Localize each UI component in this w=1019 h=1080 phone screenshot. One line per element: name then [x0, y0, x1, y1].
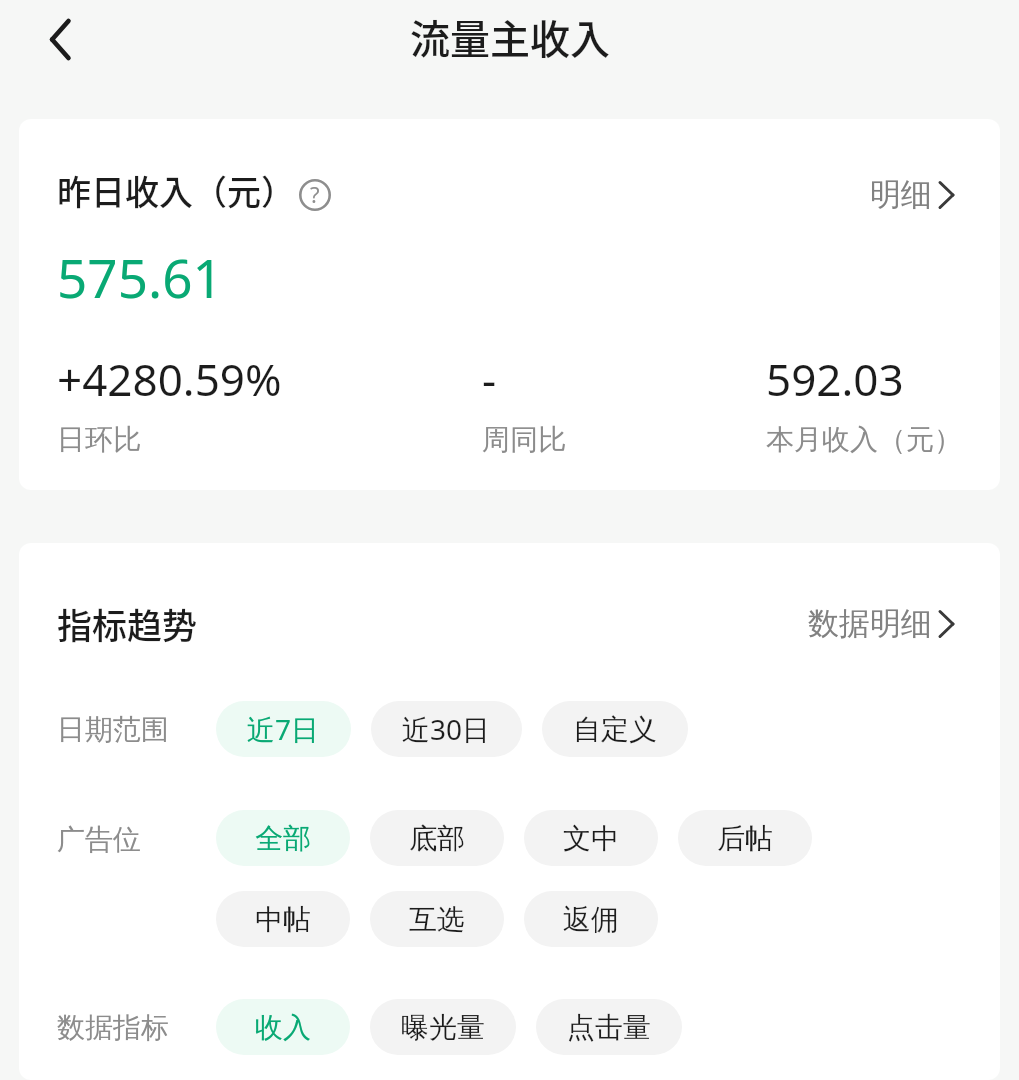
staticText: -	[482, 349, 497, 409]
staticText: 日环比	[57, 422, 141, 457]
staticText: 文中	[563, 821, 619, 856]
button[interactable]: 互选	[370, 891, 504, 947]
staticText: 曝光量	[401, 1010, 485, 1045]
staticText: 互选	[409, 902, 465, 937]
button[interactable]: 文中	[524, 810, 658, 866]
staticText: 全部	[255, 821, 311, 856]
staticText: 明细	[870, 175, 932, 214]
staticText: 返佣	[563, 902, 619, 937]
staticText: 近7日	[247, 710, 320, 748]
button[interactable]: 明细	[870, 175, 962, 214]
button[interactable]: 曝光量	[370, 999, 516, 1055]
staticText: 数据明细	[808, 604, 932, 643]
staticText: 周同比	[482, 422, 566, 457]
button[interactable]: 中帖	[216, 891, 350, 947]
staticText: 近30日	[402, 710, 491, 748]
staticText: 日期范围	[57, 712, 169, 747]
button[interactable]: 点击量	[536, 999, 682, 1055]
staticText: 中帖	[255, 902, 311, 937]
staticText: 流量主收入	[410, 8, 610, 66]
button[interactable]: 收入	[216, 999, 350, 1055]
button[interactable]: 近30日	[371, 701, 522, 757]
staticText: 指标趋势	[57, 598, 198, 649]
button[interactable]: 近7日	[216, 701, 351, 757]
staticText: 广告位	[57, 822, 141, 857]
button[interactable]: 后帖	[678, 810, 812, 866]
button[interactable]: 底部	[370, 810, 504, 866]
button[interactable]: 数据明细	[808, 604, 962, 643]
staticText: 数据指标	[57, 1010, 169, 1045]
staticText: 575.61	[57, 241, 223, 313]
staticText: 昨日收入（元）	[57, 166, 295, 215]
staticText: 后帖	[717, 821, 773, 856]
button[interactable]: 全部	[216, 810, 350, 866]
staticText: ?	[310, 179, 320, 209]
button[interactable]: 返佣	[524, 891, 658, 947]
staticText: 点击量	[567, 1010, 651, 1045]
staticText: 自定义	[573, 712, 657, 747]
staticText: 底部	[409, 821, 465, 856]
button[interactable]: Help: what is yesterday's income	[299, 179, 331, 211]
staticText: +4280.59%	[57, 349, 282, 409]
staticText: 592.03	[766, 349, 904, 409]
button[interactable]: 自定义	[542, 701, 688, 757]
button[interactable]: Back	[28, 7, 92, 71]
staticText: 收入	[255, 1010, 311, 1045]
staticText: 本月收入（元）	[766, 422, 962, 457]
